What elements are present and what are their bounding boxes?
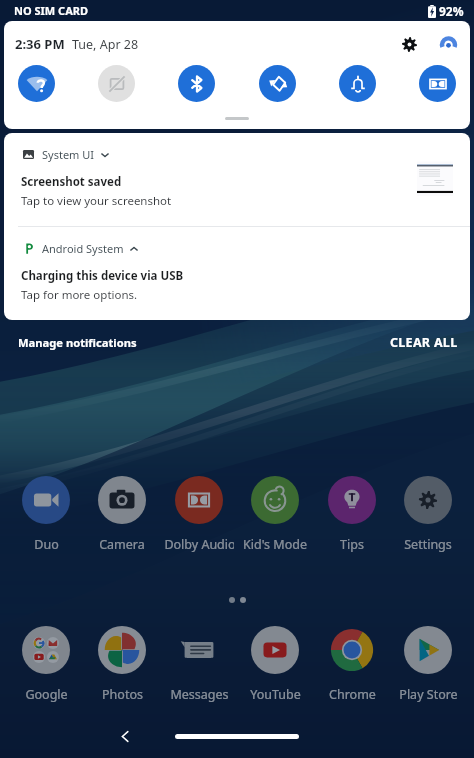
button[interactable]: Back (112, 723, 138, 749)
staticText: Google (25, 686, 68, 703)
staticText: CLEAR ALL (390, 334, 458, 351)
button[interactable]: Camera (87, 476, 157, 553)
staticText: 92% (439, 3, 464, 19)
button[interactable]: Settings (396, 31, 422, 57)
button[interactable]: Google (11, 626, 81, 703)
button[interactable]: Bluetooth (178, 65, 215, 102)
staticText: YouTube (250, 686, 301, 703)
staticText: Tue, Apr 28 (72, 36, 139, 53)
staticText: Tap to view your screenshot (21, 193, 172, 209)
staticText: Play Store (399, 686, 458, 703)
button[interactable]: Settings (393, 476, 463, 553)
button[interactable]: Chrome (317, 626, 387, 703)
staticText: Settings (404, 536, 452, 553)
button[interactable]: Mute notifications (98, 65, 135, 102)
staticText: Charging this device via USB (21, 268, 184, 284)
button[interactable]: Manage notifications (18, 329, 137, 356)
staticText: Tips (340, 536, 364, 553)
staticText: Manage notifications (18, 335, 137, 350)
staticText: Camera (99, 536, 145, 553)
staticText: Android System (42, 241, 124, 256)
button[interactable]: Android System (4, 227, 470, 320)
button[interactable]: System UI (4, 133, 470, 226)
button[interactable]: Notifications (339, 65, 376, 102)
staticText: Screenshot saved (21, 174, 122, 190)
button[interactable]: YouTube (240, 626, 310, 703)
staticText: Messages (170, 686, 229, 703)
staticText: Tap for more options. (21, 287, 138, 303)
staticText: NO SIM CARD (14, 3, 89, 18)
staticText: Photos (102, 686, 143, 703)
button[interactable]: Play Store (393, 626, 463, 703)
button[interactable]: Kid's Mode (240, 476, 310, 553)
staticText: System UI (42, 147, 95, 162)
button[interactable]: Tips (317, 476, 387, 553)
button[interactable]: User account (435, 31, 461, 57)
staticText: Duo (34, 536, 59, 553)
button[interactable]: Photos (87, 626, 157, 703)
button[interactable]: Home (175, 734, 299, 739)
button[interactable]: Wi-Fi (18, 65, 55, 102)
button[interactable]: Dolby Audio (419, 65, 456, 102)
staticText: 2:36 PM (15, 35, 65, 53)
button[interactable]: Duo (11, 476, 81, 553)
staticText: Kid's Mode (243, 536, 307, 553)
button[interactable]: Messages (164, 626, 234, 703)
button[interactable]: CLEAR ALL (390, 328, 458, 357)
staticText: Dolby Audio (164, 536, 234, 553)
button[interactable]: Dolby Audio (164, 476, 234, 553)
staticText: Chrome (329, 686, 376, 703)
button[interactable]: Auto rotate (259, 65, 296, 102)
